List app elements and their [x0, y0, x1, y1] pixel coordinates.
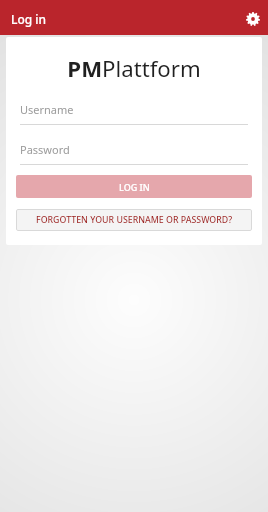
button[interactable]: Username — [16, 102, 252, 125]
staticText: PMPlattform — [16, 53, 252, 83]
staticText: Username — [20, 102, 74, 117]
staticText: FORGOTTEN YOUR USERNAME OR PASSWORD? — [36, 214, 233, 226]
button[interactable]: LOG IN — [16, 175, 252, 198]
button[interactable]: FORGOTTEN YOUR USERNAME OR PASSWORD? — [16, 209, 252, 231]
button[interactable]: Password — [16, 142, 252, 165]
staticText: LOG IN — [119, 181, 150, 193]
button[interactable]: Settings — [240, 6, 266, 32]
staticText: Password — [20, 142, 70, 157]
staticText: Log in — [11, 11, 47, 27]
